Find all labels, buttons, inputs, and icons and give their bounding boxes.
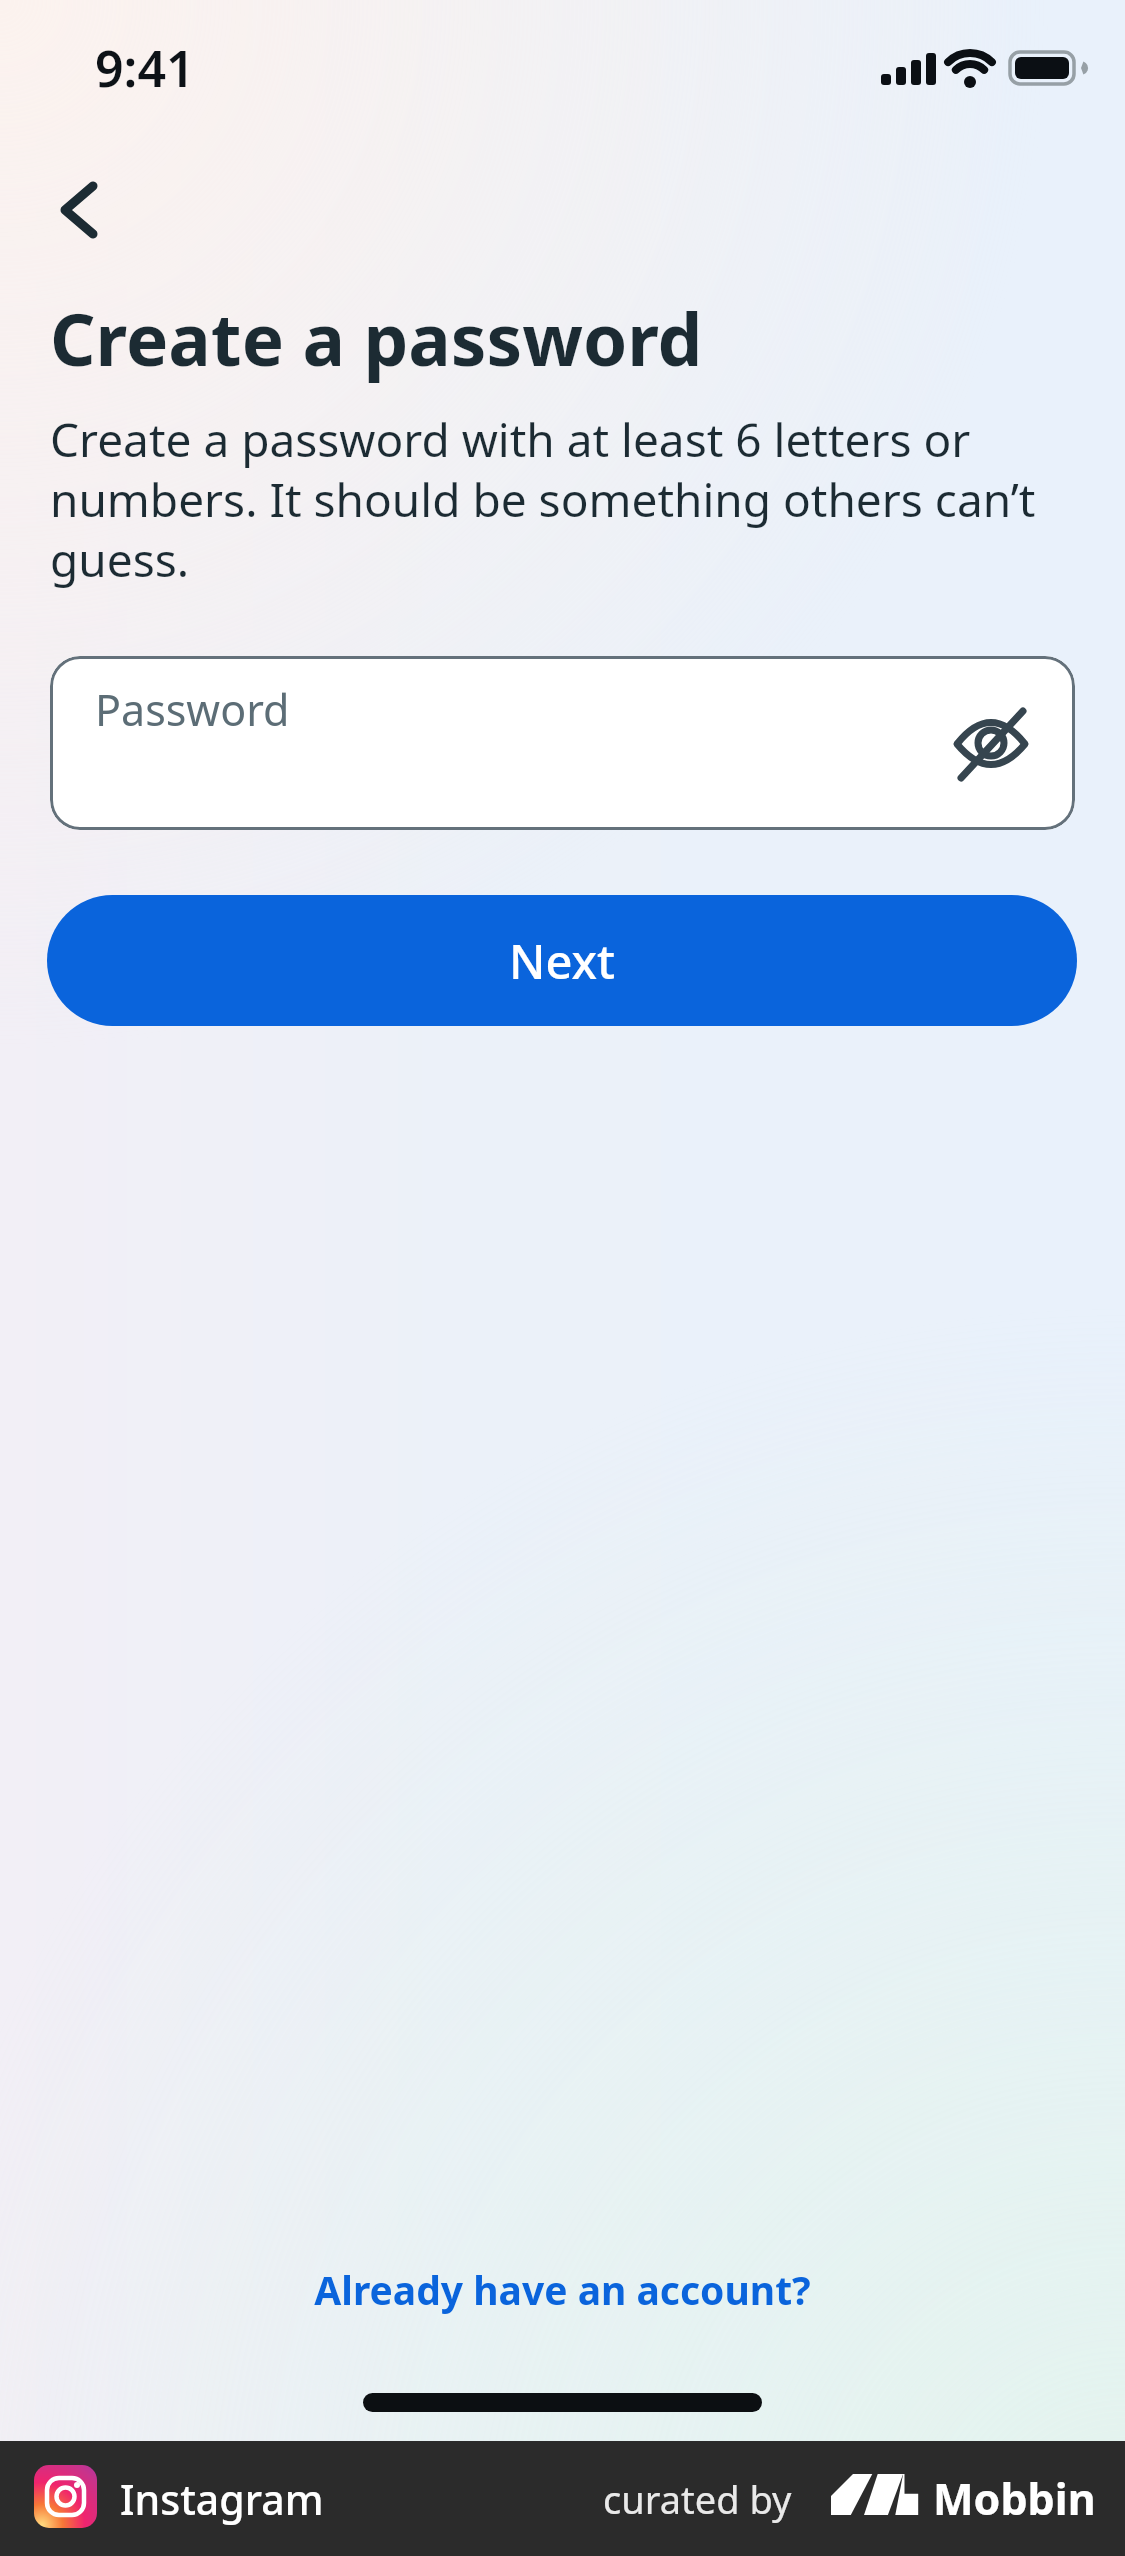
button[interactable]: Password: [50, 656, 1075, 830]
staticText: curated by: [603, 2473, 792, 2525]
staticText: Create a password: [50, 290, 703, 387]
staticText: Instagram: [120, 2471, 324, 2527]
staticText: Already have an account?: [314, 2263, 811, 2316]
staticText: Mobbin: [933, 2469, 1096, 2528]
button[interactable]: [35, 160, 125, 260]
staticText: Password: [95, 680, 290, 739]
staticText: Next: [509, 929, 616, 993]
button[interactable]: Next: [47, 895, 1077, 1026]
button[interactable]: Already have an account?: [0, 2253, 1125, 2325]
staticText: Create a password with at least 6 letter…: [50, 408, 1060, 591]
staticText: 9:41: [95, 34, 195, 102]
